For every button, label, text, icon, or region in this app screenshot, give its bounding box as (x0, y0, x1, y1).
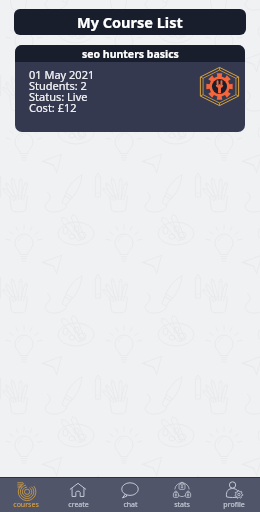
staticText: 01 May 2021 (29, 67, 95, 82)
staticText: courses (13, 500, 39, 510)
staticText: Students: 2 (29, 78, 87, 93)
staticText: Status: Live (29, 89, 88, 104)
button[interactable]: My Course List (14, 9, 246, 35)
staticText: seo hunters basics (82, 47, 179, 61)
staticText: My Course List (77, 12, 183, 32)
button[interactable]: create (52, 478, 104, 512)
button[interactable]: chat (104, 478, 156, 512)
staticText: stats (174, 500, 190, 510)
staticText: chat (123, 500, 138, 510)
staticText: create (68, 500, 89, 510)
button[interactable]: seo hunters basics (15, 45, 245, 132)
button[interactable]: profile (208, 478, 260, 512)
staticText: Cost: £12 (29, 100, 77, 115)
button[interactable]: courses (0, 478, 52, 512)
staticText: profile (223, 500, 245, 510)
button[interactable]: stats (156, 478, 208, 512)
